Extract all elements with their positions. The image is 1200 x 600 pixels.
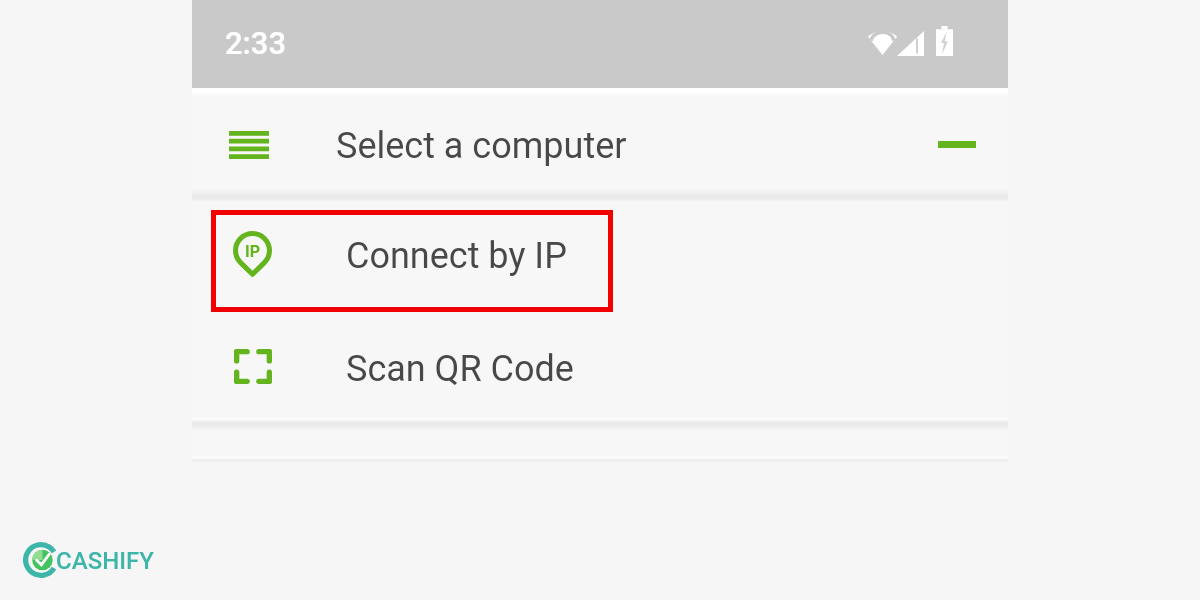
button[interactable]: Scan QR Code <box>192 310 1008 417</box>
button[interactable]: IP <box>192 197 1008 310</box>
staticText: Connect by IP <box>346 235 567 277</box>
staticText: IP <box>245 242 260 261</box>
staticText: Scan QR Code <box>346 348 574 390</box>
staticText: 2:33 <box>225 25 287 61</box>
staticText: Select a computer <box>336 125 627 167</box>
button[interactable]: Minimize <box>929 112 985 168</box>
staticText: CASHIFY <box>56 547 154 575</box>
button[interactable]: Open navigation menu <box>217 112 273 168</box>
